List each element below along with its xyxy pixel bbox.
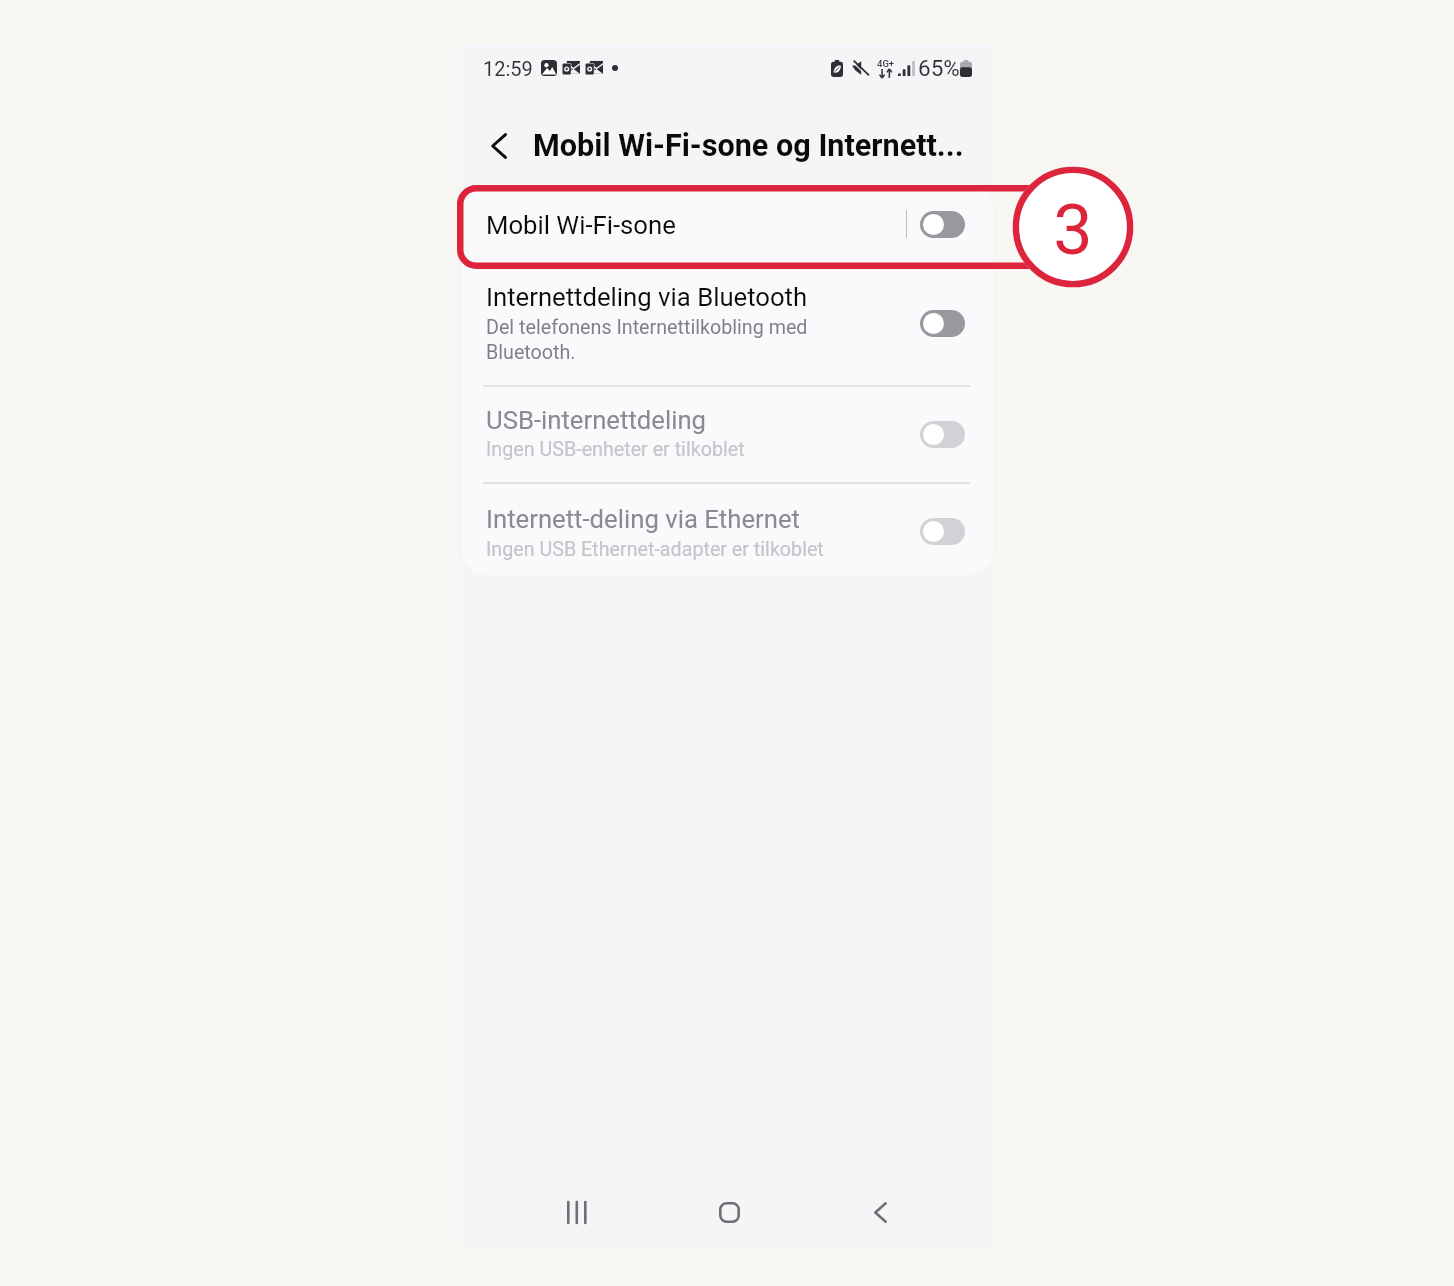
button[interactable]: Toggle <box>920 310 965 337</box>
button[interactable] <box>462 184 993 268</box>
staticText: USB-internettdeling <box>486 405 706 435</box>
staticText: Del telefonens Internettilkobling med <box>486 316 808 339</box>
button[interactable]: Recents <box>547 1182 607 1242</box>
button[interactable]: Toggle <box>920 211 965 238</box>
staticText: Bluetooth. <box>486 341 576 364</box>
button[interactable]: Home <box>699 1182 759 1242</box>
staticText: 3 <box>1053 189 1093 271</box>
staticText: Internett-deling via Ethernet <box>486 504 800 534</box>
button[interactable] <box>462 385 993 482</box>
staticText: Mobil Wi-Fi-sone <box>486 210 676 240</box>
staticText: Mobil Wi-Fi-sone og Internett... <box>533 128 964 164</box>
button[interactable]: Toggle <box>920 518 965 545</box>
staticText: 65% <box>918 55 960 81</box>
staticText: Internettdeling via Bluetooth <box>486 282 808 312</box>
staticText: 12:59 <box>483 57 533 80</box>
staticText: Ingen USB-enheter er tilkoblet <box>486 438 745 461</box>
staticText: 4G+ <box>877 58 895 69</box>
button[interactable]: Back <box>476 124 520 168</box>
button[interactable] <box>462 268 993 385</box>
button[interactable]: Toggle <box>920 421 965 448</box>
staticText: Ingen USB Ethernet-adapter er tilkoblet <box>486 538 824 561</box>
button[interactable] <box>462 482 993 575</box>
button[interactable]: Back <box>850 1182 910 1242</box>
